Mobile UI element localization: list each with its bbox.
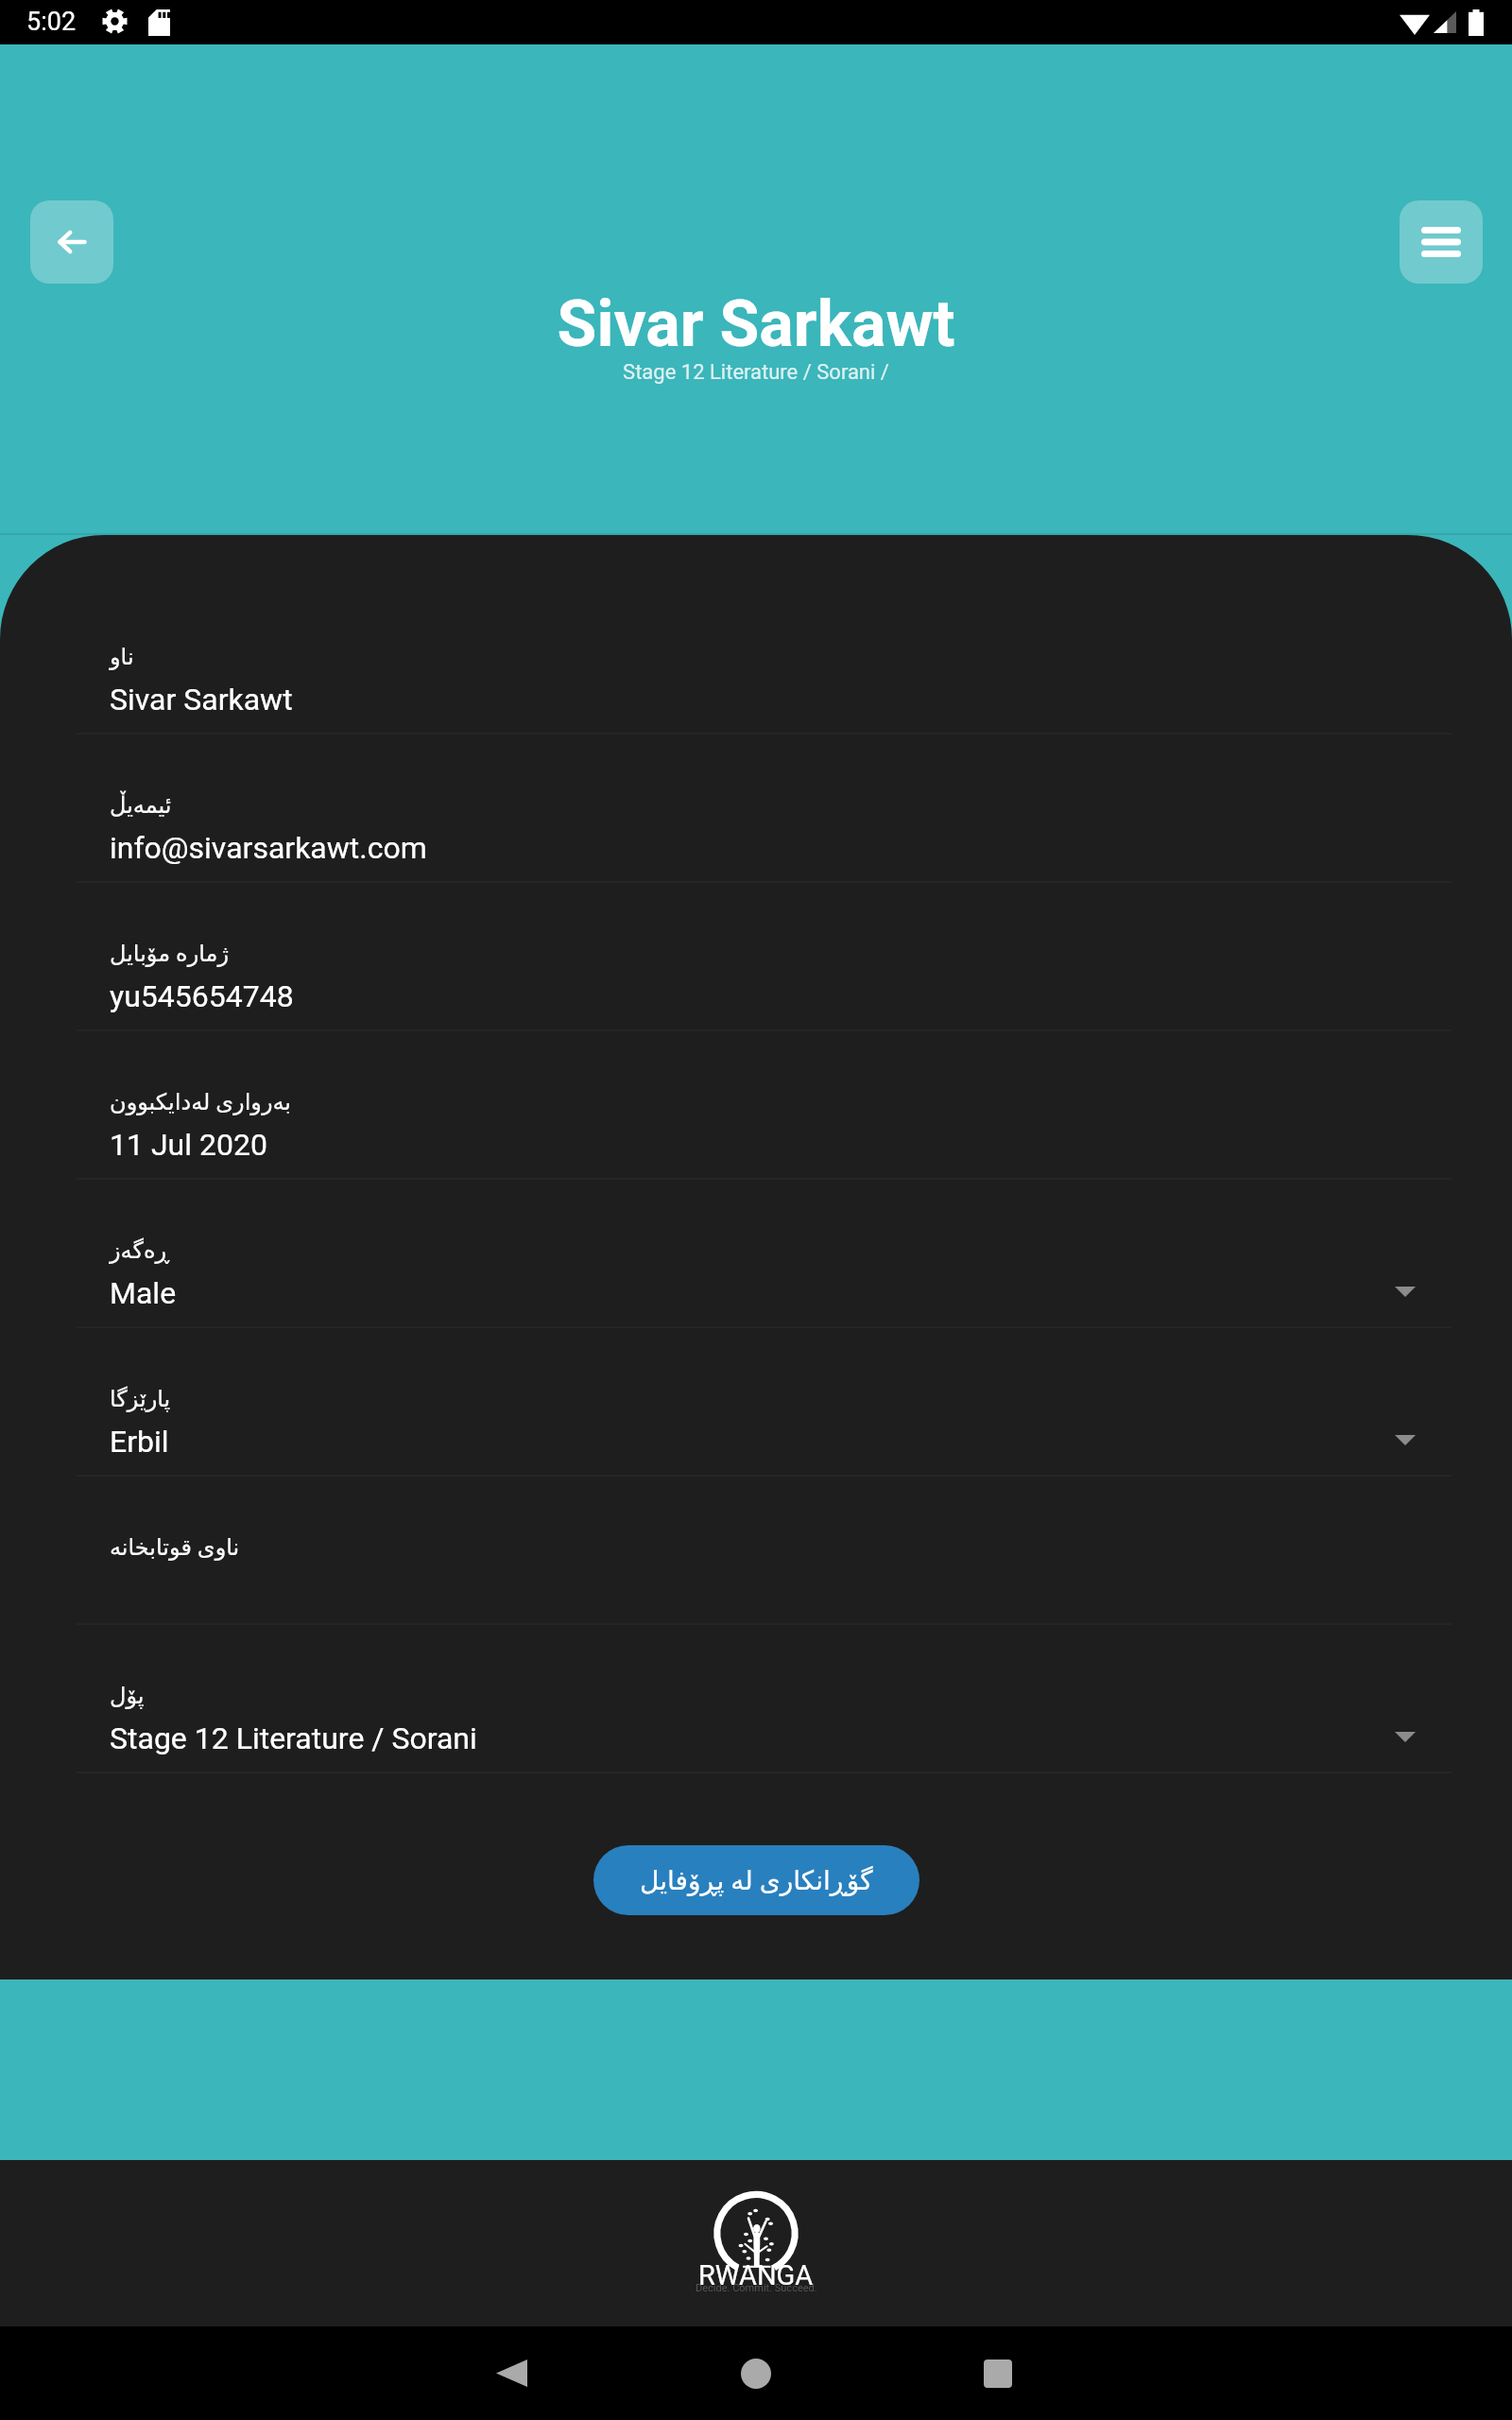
staticText: Stage 12 Literature / Sorani bbox=[110, 1720, 477, 1756]
staticText: yu545654748 bbox=[110, 978, 294, 1014]
button[interactable]: ناوی قوتابخانە bbox=[0, 1477, 1512, 1625]
staticText: پارێزگا bbox=[110, 1386, 171, 1412]
staticText: ناوی قوتابخانە bbox=[110, 1534, 240, 1561]
staticText: RWANGA bbox=[698, 2259, 814, 2291]
button[interactable]: Home bbox=[678, 2326, 834, 2420]
button[interactable]: ژمارە مۆبایل bbox=[0, 883, 1512, 1031]
staticText: Decide. Commit. Succeed. bbox=[696, 2282, 817, 2294]
staticText: ئیمەیڵ bbox=[110, 792, 172, 819]
button[interactable]: ڕەگەز bbox=[0, 1180, 1512, 1328]
staticText: 11 Jul 2020 bbox=[110, 1127, 267, 1163]
button[interactable]: Menu bbox=[1400, 200, 1483, 284]
staticText: پۆل bbox=[110, 1683, 145, 1709]
button[interactable]: Back bbox=[30, 200, 113, 284]
staticText: 5:02 bbox=[26, 7, 77, 37]
staticText: ژمارە مۆبایل bbox=[110, 941, 229, 967]
button[interactable]: Recent apps bbox=[919, 2326, 1076, 2420]
staticText: Sivar Sarkawt bbox=[110, 682, 293, 717]
staticText: بەرواری لەدایکبوون bbox=[110, 1089, 292, 1115]
staticText: Stage 12 Literature / Sorani / bbox=[0, 360, 1512, 385]
button[interactable]: ئیمەیڵ bbox=[0, 735, 1512, 883]
staticText: ڕەگەز bbox=[110, 1237, 170, 1264]
button[interactable]: پۆل bbox=[0, 1625, 1512, 1773]
button[interactable]: پارێزگا bbox=[0, 1328, 1512, 1477]
staticText: گۆڕانکاری لە پڕۆفایل bbox=[640, 1865, 873, 1896]
staticText: Sivar Sarkawt bbox=[0, 286, 1512, 362]
staticText: Erbil bbox=[110, 1424, 169, 1460]
button[interactable]: Back bbox=[433, 2326, 590, 2420]
button[interactable]: ناو bbox=[0, 586, 1512, 735]
button[interactable]: بەرواری لەدایکبوون bbox=[0, 1031, 1512, 1180]
staticText: Male bbox=[110, 1275, 177, 1311]
staticText: ناو bbox=[110, 644, 134, 670]
button[interactable]: گۆڕانکاری لە پڕۆفایل bbox=[593, 1845, 919, 1915]
staticText: info@sivarsarkawt.com bbox=[110, 830, 427, 866]
